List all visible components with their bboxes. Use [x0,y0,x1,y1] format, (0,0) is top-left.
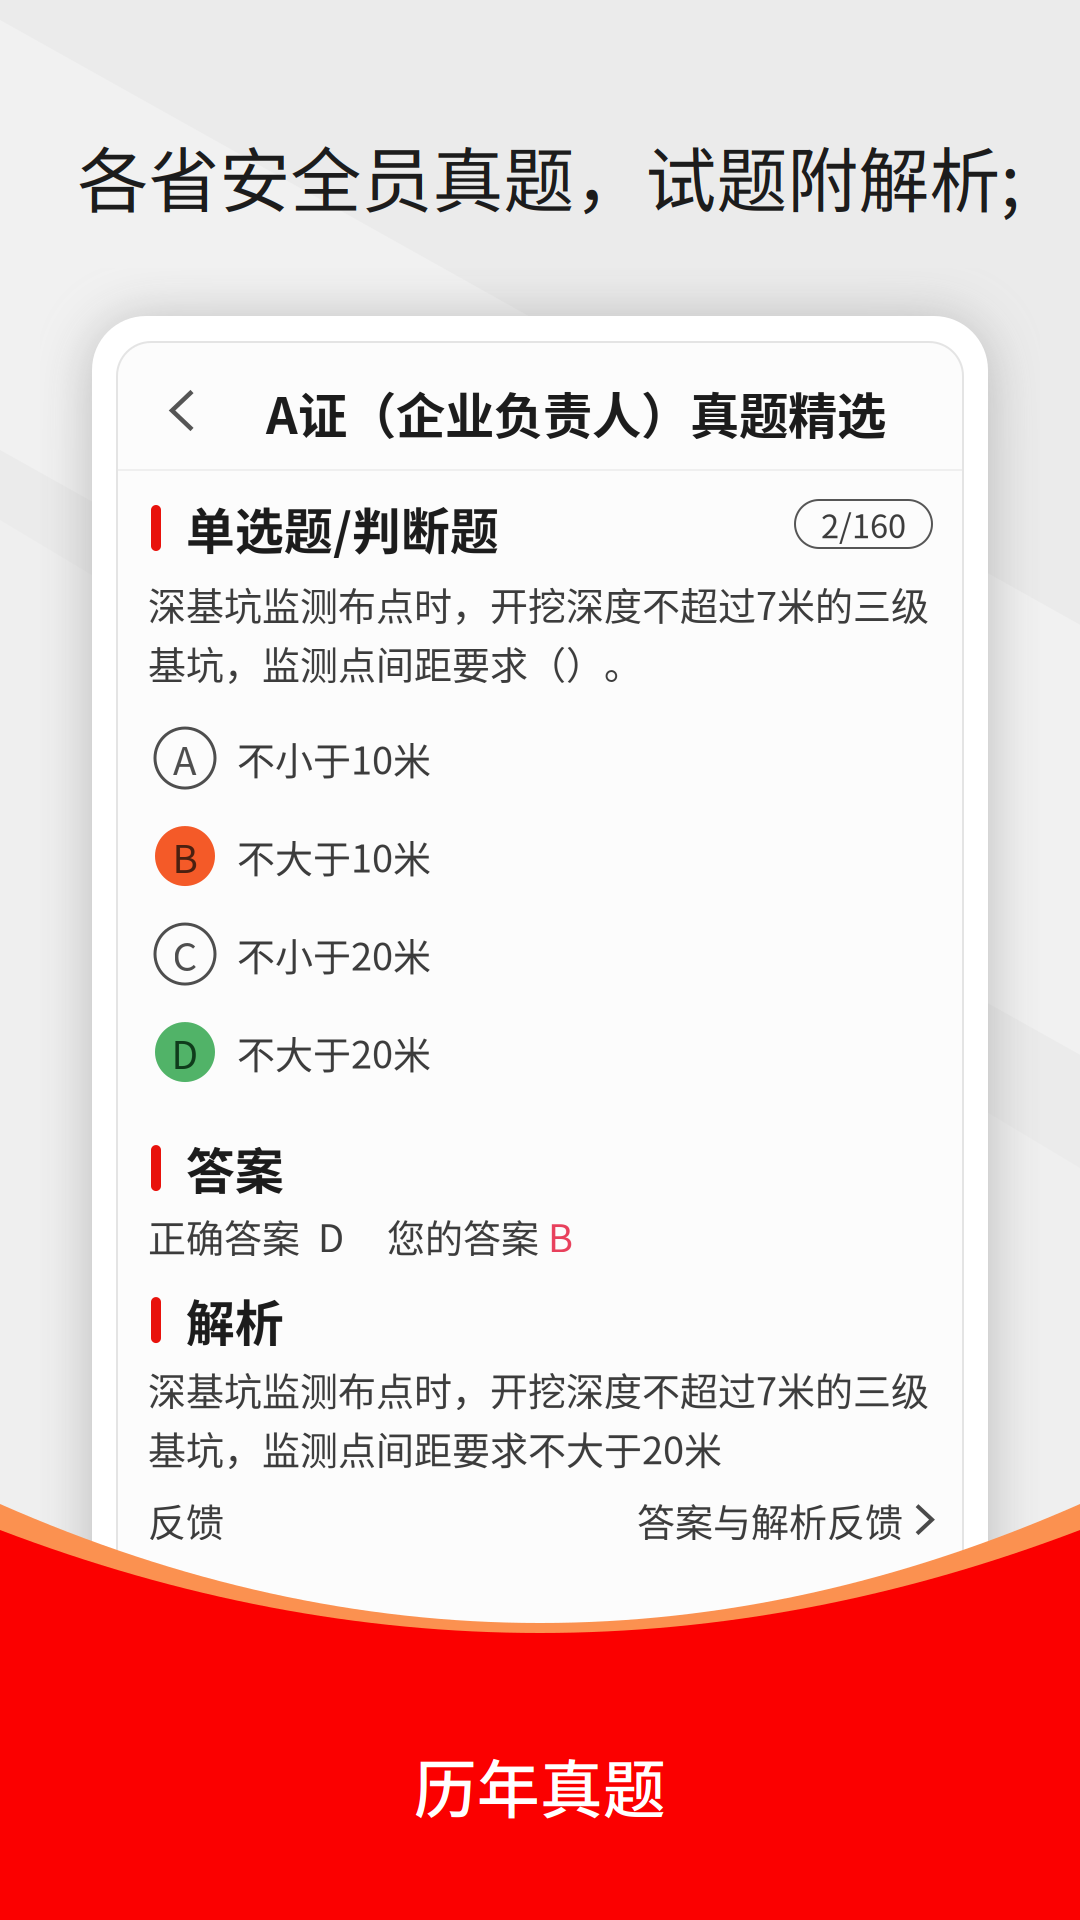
staticText: 解析 [186,1285,284,1355]
staticText: 反馈 [148,1492,224,1547]
staticText: 历年真题 [414,1740,666,1830]
staticText: 2/160 [821,500,906,548]
button[interactable]: 返回 [117,342,227,469]
staticText: 正确答案 D [148,1208,344,1263]
staticText: 不小于20米 [237,926,431,981]
button[interactable]: B [148,807,932,905]
staticText: A [173,730,197,786]
staticText: 单选题/判断题 [186,493,499,563]
staticText: 不小于10米 [237,730,431,785]
staticText: C [172,926,197,982]
button[interactable]: 反馈 [148,1492,224,1547]
button[interactable]: A [148,709,932,807]
staticText: A证（企业负责人）真题精选 [266,377,886,448]
staticText: 深基坑监测布点时，开挖深度不超过7米的三级基坑，监测点间距要求不大于20米 [148,1361,929,1475]
staticText: 不大于20米 [237,1024,431,1079]
button[interactable]: D [148,1003,932,1101]
button[interactable]: C [148,905,932,1003]
staticText: 各省安全员真题，试题附解析; [77,125,1020,227]
staticText: 您的答案 [387,1208,548,1263]
staticText: 深基坑监测布点时，开挖深度不超过7米的三级基坑，监测点间距要求（）。 [148,576,929,690]
button[interactable]: 答案与解析反馈 [637,1492,932,1547]
staticText: B [548,1208,573,1263]
staticText: 答案 [186,1133,284,1203]
staticText: 答案与解析反馈 [637,1492,903,1547]
staticText: 不大于10米 [237,828,431,883]
staticText: D [171,1024,198,1080]
staticText: B [172,828,197,884]
